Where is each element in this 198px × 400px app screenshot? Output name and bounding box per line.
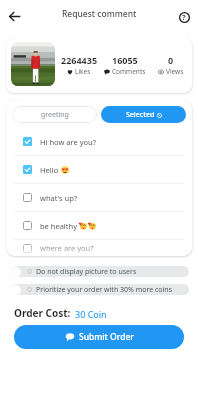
- staticText: 30 Coin: [75, 308, 107, 320]
- staticText: Do not display picture to users: [36, 267, 137, 277]
- staticText: Selected: [126, 110, 155, 120]
- staticText: where are you?: [40, 243, 94, 253]
- staticText: Order Cost:: [14, 306, 71, 320]
- button[interactable]: greeting: [12, 106, 97, 123]
- staticText: Views: [166, 67, 184, 76]
- button[interactable]: Do not display picture to users: [11, 266, 189, 277]
- staticText: 0: [168, 54, 174, 66]
- button[interactable]: Submit Order: [14, 325, 184, 349]
- button[interactable]: Help: [174, 7, 194, 27]
- staticText: what's up?: [40, 193, 78, 203]
- button[interactable]: Prioritize your order with 30% more coin…: [11, 284, 189, 295]
- staticText: Likes: [75, 67, 91, 76]
- staticText: 2264435: [61, 54, 98, 66]
- staticText: 16055: [112, 54, 138, 66]
- button[interactable]: be healthy: [6, 212, 192, 239]
- button[interactable]: Hello: [6, 156, 192, 183]
- staticText: Hello: [40, 165, 61, 175]
- button[interactable]: Hi how are you?: [6, 128, 192, 155]
- button[interactable]: what's up?: [6, 184, 192, 211]
- staticText: greeting: [41, 110, 69, 120]
- staticText: Request comment: [62, 8, 137, 20]
- staticText: Prioritize your order with 30% more coin…: [36, 285, 173, 295]
- button[interactable]: where are you?: [6, 240, 192, 256]
- button[interactable]: Selected: [101, 106, 186, 123]
- staticText: ?: [182, 12, 186, 22]
- staticText: be healthy: [40, 221, 79, 231]
- staticText: Submit Order: [79, 331, 134, 343]
- staticText: Comments: [112, 67, 146, 76]
- staticText: Hi how are you?: [40, 137, 96, 147]
- button[interactable]: Back: [4, 6, 24, 26]
